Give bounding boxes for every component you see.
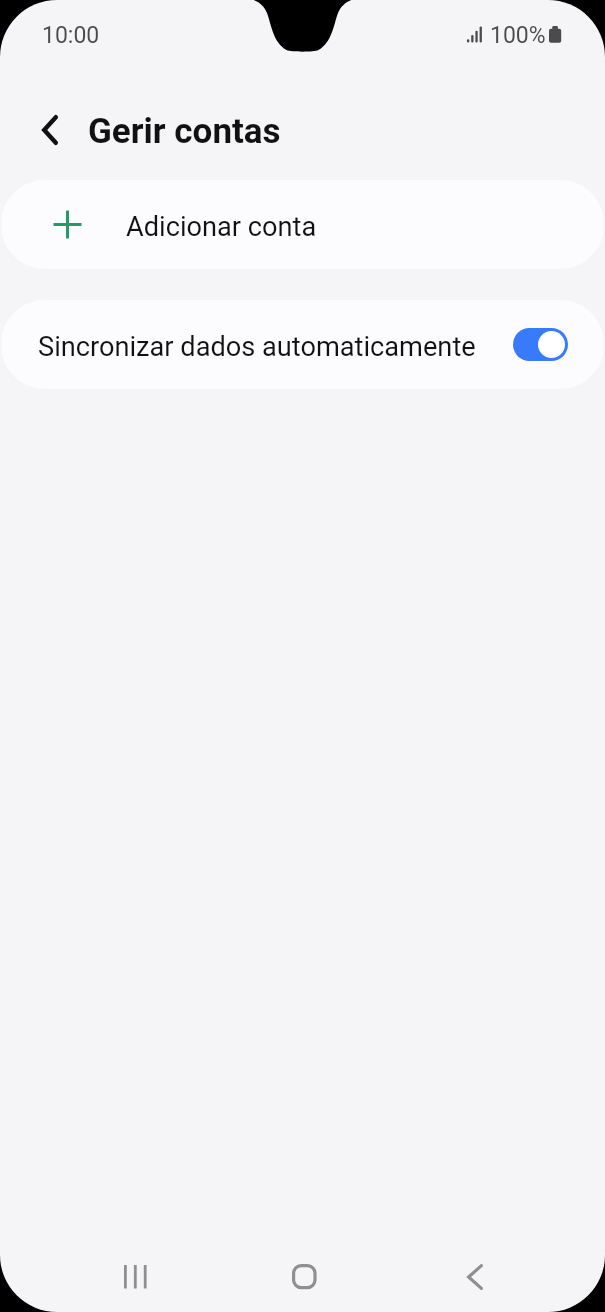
staticText: Gerir contas — [88, 111, 281, 152]
button[interactable]: Home — [274, 1246, 335, 1307]
button[interactable]: Adicionar conta — [1, 180, 604, 269]
staticText: Adicionar conta — [126, 211, 317, 243]
staticText: 100% — [490, 22, 546, 49]
button[interactable]: Back — [444, 1246, 505, 1307]
button[interactable]: Recent apps — [105, 1246, 166, 1307]
button[interactable]: Sincronizar dados automaticamente — [1, 300, 604, 389]
button[interactable]: Back — [26, 106, 74, 154]
staticText: Sincronizar dados automaticamente — [38, 331, 476, 363]
button[interactable]: Sincronizar dados automaticamente — [513, 328, 568, 361]
staticText: 10:00 — [42, 22, 100, 49]
